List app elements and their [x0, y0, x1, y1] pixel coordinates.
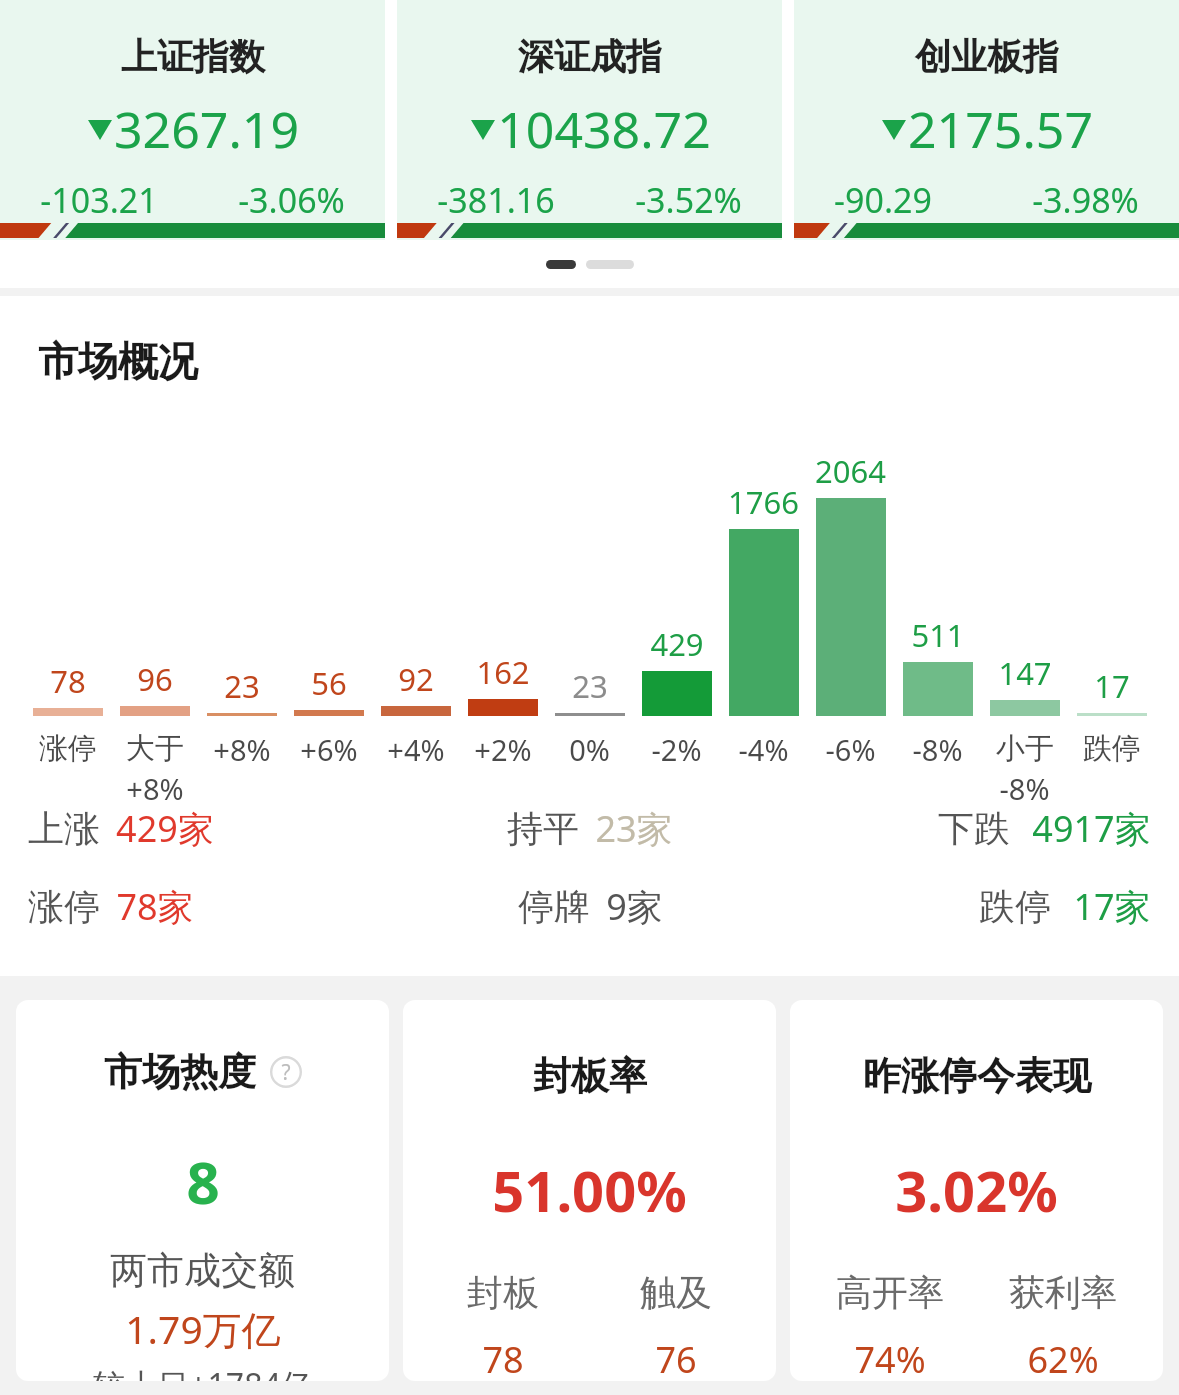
staticText: 封板 — [467, 1270, 539, 1315]
button[interactable]: 深证成指 — [397, 0, 782, 240]
staticText: 78 — [50, 660, 86, 702]
staticText: +8% — [213, 730, 271, 769]
staticText: -2% — [651, 730, 702, 769]
staticText: 23 — [224, 665, 260, 707]
staticText: -8% — [912, 730, 963, 769]
staticText: 涨停 — [39, 730, 97, 767]
staticText: 跌停 — [1083, 730, 1141, 767]
staticText: ? — [281, 1058, 291, 1087]
staticText: 3267.19 — [114, 95, 299, 163]
button[interactable]: 昨涨停今表现 — [790, 1000, 1163, 1381]
staticText: -3.06% — [238, 177, 345, 223]
staticText: 23家 — [595, 804, 673, 853]
staticText: 高开率 — [836, 1270, 944, 1315]
staticText: 深证成指 — [518, 34, 662, 79]
staticText: 1.79万亿 — [125, 1302, 281, 1355]
staticText: 511 — [911, 614, 965, 656]
staticText: 78 — [482, 1335, 524, 1381]
staticText: 停牌 — [518, 884, 590, 929]
staticText: 市场概况 — [38, 336, 198, 386]
staticText: 10438.72 — [497, 95, 711, 163]
staticText: 触及 — [640, 1270, 712, 1315]
staticText: 62% — [1027, 1335, 1099, 1381]
staticText: 昨涨停今表现 — [863, 1052, 1091, 1100]
button[interactable]: 上证指数 — [0, 0, 385, 240]
button[interactable] — [546, 260, 576, 269]
staticText: 51.00% — [492, 1152, 687, 1228]
staticText: 56 — [311, 662, 347, 704]
staticText: 96 — [137, 658, 173, 700]
button[interactable]: 市场热度说明 — [270, 1056, 302, 1088]
staticText: 74% — [854, 1335, 926, 1381]
staticText: +4% — [387, 730, 445, 769]
staticText: 23 — [572, 665, 608, 707]
staticText: 较上日+1784亿 — [93, 1363, 313, 1381]
staticText: 2175.57 — [908, 95, 1093, 163]
staticText: -90.29 — [834, 177, 932, 223]
staticText: +8% — [126, 769, 184, 800]
staticText: 上涨 — [28, 806, 100, 851]
staticText: 3.02% — [895, 1152, 1058, 1228]
staticText: 获利率 — [1009, 1270, 1117, 1315]
staticText: 两市成交额 — [110, 1247, 295, 1294]
staticText: -3.98% — [1032, 177, 1139, 223]
staticText: 4917家 — [1032, 804, 1151, 853]
button[interactable]: 市场热度 — [16, 1000, 389, 1381]
button[interactable]: 创业板指 — [794, 0, 1179, 240]
staticText: -103.21 — [40, 177, 158, 223]
staticText: -3.52% — [635, 177, 742, 223]
staticText: 0% — [569, 730, 610, 769]
staticText: 1766 — [728, 481, 799, 523]
staticText: 市场热度 — [104, 1048, 256, 1096]
staticText: 92 — [398, 658, 434, 700]
staticText: 大于 — [126, 730, 184, 767]
staticText: 76 — [655, 1335, 697, 1381]
staticText: 跌停 — [979, 884, 1051, 929]
staticText: 封板率 — [533, 1052, 647, 1100]
staticText: 9家 — [606, 882, 663, 931]
staticText: 涨停 — [28, 884, 100, 929]
staticText: 429家 — [116, 804, 214, 853]
staticText: 下跌 — [938, 806, 1010, 851]
staticText: 17家 — [1073, 882, 1151, 931]
staticText: -8% — [999, 769, 1050, 800]
staticText: +2% — [474, 730, 532, 769]
staticText: -6% — [825, 730, 876, 769]
staticText: 持平 — [507, 806, 579, 851]
staticText: -4% — [738, 730, 789, 769]
staticText: 上证指数 — [121, 34, 265, 79]
staticText: 小于 — [996, 730, 1054, 767]
button[interactable]: 封板率 — [403, 1000, 776, 1381]
staticText: 8 — [186, 1142, 220, 1221]
staticText: -381.16 — [437, 177, 555, 223]
staticText: 429 — [650, 623, 704, 665]
staticText: 147 — [998, 652, 1052, 694]
staticText: 2064 — [815, 450, 886, 492]
staticText: 创业板指 — [915, 34, 1059, 79]
staticText: +6% — [300, 730, 358, 769]
button[interactable] — [586, 260, 634, 269]
staticText: 162 — [476, 651, 530, 693]
staticText: 17 — [1094, 665, 1130, 707]
staticText: 78家 — [116, 882, 194, 931]
